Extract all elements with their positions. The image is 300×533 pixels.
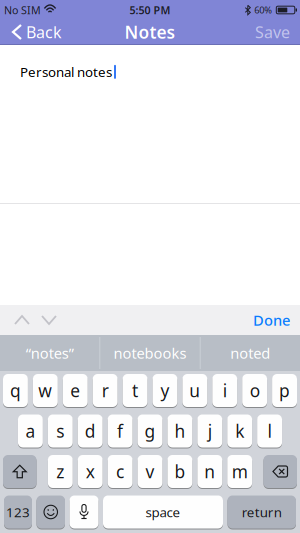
button[interactable]: h (167, 414, 192, 447)
staticText: noted (230, 343, 270, 363)
button[interactable]: w (33, 374, 58, 407)
staticText: k (235, 419, 244, 442)
staticText: c (116, 460, 124, 483)
staticText: n (204, 460, 215, 483)
button[interactable]: g (137, 414, 162, 447)
button[interactable]: Shift (3, 455, 36, 488)
button[interactable]: c (108, 455, 132, 488)
staticText: “notes” (26, 343, 74, 363)
button[interactable]: m (227, 455, 252, 488)
button[interactable]: p (272, 374, 297, 407)
button[interactable]: return (227, 495, 296, 528)
staticText: 60% (254, 4, 272, 16)
staticText: s (56, 419, 64, 442)
staticText: v (145, 460, 154, 483)
staticText: l (268, 419, 272, 442)
staticText: Personal notes (20, 63, 112, 81)
button[interactable]: 123 (4, 495, 32, 528)
staticText: 123 (6, 503, 30, 521)
button[interactable]: l (257, 414, 282, 447)
button[interactable]: s (48, 414, 73, 447)
button[interactable]: o (242, 374, 267, 407)
staticText: notebooks (113, 343, 186, 363)
button[interactable]: noted (201, 335, 300, 371)
staticText: Done (253, 310, 290, 330)
button[interactable]: t (123, 374, 147, 407)
staticText: o (250, 379, 260, 402)
staticText: f (117, 419, 123, 442)
button[interactable]: q (3, 374, 28, 407)
button[interactable]: d (78, 414, 103, 447)
staticText: g (144, 419, 155, 442)
button[interactable]: Done (253, 310, 300, 330)
staticText: 5:50 PM (129, 3, 170, 17)
staticText: q (10, 379, 21, 402)
staticText: t (132, 379, 138, 402)
button[interactable]: f (108, 414, 132, 447)
button[interactable]: “notes” (0, 335, 99, 371)
button[interactable]: Emoji (36, 495, 65, 528)
staticText: h (174, 419, 185, 442)
button[interactable]: a (18, 414, 43, 447)
button[interactable]: e (63, 374, 88, 407)
button[interactable]: r (93, 374, 118, 407)
button[interactable]: z (48, 455, 73, 488)
staticText: No SIM (4, 3, 41, 17)
button[interactable]: Save (255, 21, 300, 43)
button[interactable]: x (78, 455, 103, 488)
staticText: b (174, 460, 185, 483)
staticText: d (85, 419, 96, 442)
button[interactable]: Delete (263, 455, 297, 488)
staticText: y (160, 379, 169, 402)
staticText: j (208, 419, 212, 442)
button[interactable]: Dictate (69, 495, 98, 528)
button[interactable]: y (152, 374, 177, 407)
button[interactable]: space (103, 495, 223, 528)
button[interactable]: j (197, 414, 222, 447)
staticText: p (279, 379, 290, 402)
staticText: m (232, 460, 248, 483)
button[interactable]: k (227, 414, 252, 447)
staticText: r (102, 379, 109, 402)
staticText: Save (255, 21, 290, 43)
staticText: e (70, 379, 80, 402)
staticText: u (189, 379, 200, 402)
button[interactable]: notebooks (100, 335, 200, 371)
button[interactable]: Back (0, 21, 62, 43)
button[interactable]: v (137, 455, 162, 488)
staticText: return (242, 503, 282, 521)
staticText: w (38, 379, 52, 402)
button[interactable]: Next field (42, 316, 56, 324)
staticText: i (223, 379, 227, 402)
staticText: Notes (124, 20, 175, 43)
button[interactable]: b (167, 455, 192, 488)
staticText: x (86, 460, 95, 483)
staticText: Back (26, 21, 62, 43)
staticText: space (145, 503, 180, 521)
staticText: z (56, 460, 64, 483)
button[interactable]: u (182, 374, 207, 407)
button[interactable]: i (212, 374, 237, 407)
button[interactable]: n (197, 455, 222, 488)
staticText: a (25, 419, 35, 442)
button[interactable]: Previous field (0, 316, 29, 324)
